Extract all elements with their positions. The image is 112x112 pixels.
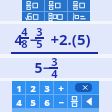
button[interactable]: Three (40, 81, 53, 94)
staticText: − (42, 58, 51, 77)
button[interactable]: Cursor left (82, 95, 99, 108)
staticText: − (29, 30, 38, 49)
staticText: 8 (21, 36, 28, 51)
staticText: 4 (51, 66, 58, 81)
staticText: 3 (36, 24, 43, 39)
button[interactable]: Integral template (68, 12, 90, 22)
staticText: 4 (21, 24, 28, 39)
staticText: 6 (44, 96, 50, 108)
button[interactable]: Five (26, 95, 39, 108)
button[interactable]: Fraction template (45, 0, 67, 11)
button[interactable]: Power template (45, 12, 67, 22)
staticText: − (58, 96, 64, 108)
button[interactable]: Six (40, 95, 53, 108)
staticText: 4 (16, 96, 22, 108)
staticText: 5 (34, 58, 43, 77)
button[interactable]: Minus (54, 95, 67, 108)
staticText: +2.(5) (50, 29, 91, 49)
button[interactable]: One (12, 81, 25, 94)
button[interactable]: Fraction (68, 95, 81, 108)
staticText: 3 (44, 82, 50, 94)
button[interactable]: Plus (54, 81, 67, 94)
button[interactable]: Square root template (22, 12, 44, 22)
button[interactable]: Backspace (68, 81, 99, 94)
staticText: 5 (30, 96, 36, 108)
staticText: 1 (16, 82, 22, 94)
staticText: + (58, 82, 64, 94)
button[interactable]: Mixed number template (22, 0, 44, 11)
staticText: 2 (30, 82, 36, 94)
staticText: 3 (51, 54, 58, 69)
staticText: 4 (14, 30, 23, 49)
button[interactable]: Two (26, 81, 39, 94)
button[interactable]: Four (12, 95, 25, 108)
button[interactable]: Repeating decimal template (68, 0, 90, 11)
staticText: 5 (36, 36, 43, 51)
